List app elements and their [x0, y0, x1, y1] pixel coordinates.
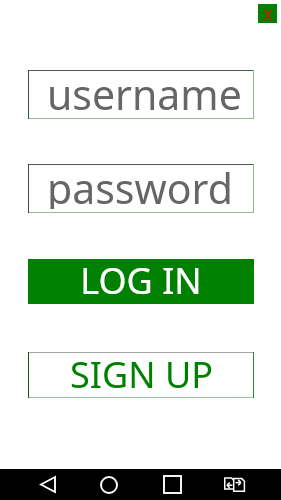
button[interactable]: Recent apps — [142, 469, 202, 500]
button[interactable]: Back — [18, 469, 78, 500]
button[interactable]: Close — [258, 4, 277, 23]
staticText: password — [47, 160, 233, 209]
button[interactable]: Home — [79, 469, 139, 500]
button[interactable]: SIGN UP — [28, 352, 254, 398]
staticText: LOG IN — [80, 256, 202, 301]
staticText: SIGN UP — [70, 350, 213, 396]
button[interactable]: LOG IN — [28, 259, 254, 304]
button[interactable]: Switch apps — [204, 469, 264, 500]
staticText: X — [263, 3, 273, 22]
button[interactable]: username — [28, 70, 254, 119]
staticText: username — [47, 66, 242, 115]
button[interactable]: password — [28, 164, 254, 213]
